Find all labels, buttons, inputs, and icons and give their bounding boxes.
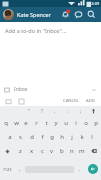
staticText: h (60, 133, 64, 141)
staticText: i (75, 119, 77, 127)
button[interactable]: , (48, 106, 61, 116)
button[interactable]: x (26, 144, 37, 158)
button[interactable]: : (61, 106, 74, 116)
button[interactable]: ? (35, 106, 48, 116)
staticText: n (70, 147, 74, 155)
button[interactable]: l (87, 130, 97, 144)
button[interactable]: Enter (84, 159, 101, 179)
staticText: CANCEL (63, 98, 79, 104)
button[interactable]: t (41, 116, 51, 130)
button[interactable]: b (57, 144, 67, 158)
button[interactable]: z (15, 144, 26, 158)
button[interactable]: Space (25, 159, 74, 179)
button[interactable]: i (71, 116, 81, 130)
staticText: b (60, 147, 64, 155)
button[interactable]: Priority (17, 97, 25, 105)
staticText: t (45, 119, 48, 127)
staticText: . (79, 166, 81, 173)
staticText: x (30, 147, 34, 155)
button[interactable]: Messages (72, 8, 85, 21)
button[interactable]: ; (74, 106, 87, 116)
staticText: Inbox (14, 86, 28, 93)
staticText: k (80, 133, 84, 141)
button[interactable]: n (67, 144, 77, 158)
staticText: , (54, 108, 56, 114)
staticText: ; (80, 108, 82, 114)
staticText: ?123 (3, 167, 12, 172)
staticText: e (24, 119, 28, 127)
button[interactable]: s (15, 130, 26, 144)
button[interactable]: c (37, 144, 47, 158)
button[interactable]: Add a to-do in "Inbox"... (5, 27, 101, 38)
button[interactable]: ADD (84, 96, 97, 106)
staticText: a (8, 133, 12, 141)
button[interactable]: o (81, 116, 91, 130)
button[interactable]: h (57, 130, 67, 144)
staticText: q (4, 119, 8, 127)
button[interactable]: m (77, 144, 87, 158)
staticText: g (50, 133, 54, 141)
button[interactable]: f (37, 130, 47, 144)
staticText: m (79, 147, 85, 155)
staticText: r (35, 119, 38, 127)
staticText: " (28, 108, 30, 114)
staticText: , (19, 166, 21, 173)
button[interactable]: k (77, 130, 87, 144)
staticText: 12:09 (89, 1, 100, 6)
staticText: f (41, 133, 44, 141)
button[interactable]: Search (85, 8, 98, 21)
staticText: p (94, 119, 98, 127)
button[interactable]: r (31, 116, 41, 130)
staticText: l (91, 133, 93, 141)
button[interactable]: ?123 (0, 159, 15, 179)
staticText: y (54, 119, 58, 127)
button[interactable]: g (47, 130, 57, 144)
staticText: w (14, 119, 19, 127)
button[interactable]: Schedule (4, 97, 12, 105)
staticText: v (50, 147, 54, 155)
button[interactable]: j (67, 130, 77, 144)
button[interactable]: p (91, 116, 101, 130)
button[interactable]: , (15, 159, 24, 179)
button[interactable]: v (47, 144, 57, 158)
staticText: ADD (86, 98, 95, 104)
staticText: j (71, 133, 73, 141)
button[interactable]: u (61, 116, 71, 130)
button[interactable]: w (11, 116, 21, 130)
button[interactable]: q (0, 116, 11, 130)
button[interactable]: Backspace (87, 144, 101, 158)
button[interactable]: Notifications (59, 8, 72, 21)
staticText: d (30, 133, 34, 141)
button[interactable]: y (51, 116, 61, 130)
button[interactable]: Shift (0, 144, 15, 158)
staticText: o (84, 119, 88, 127)
button[interactable]: Voice input (87, 106, 100, 116)
button[interactable]: a (4, 130, 15, 144)
staticText: ? (41, 108, 43, 114)
staticText: s (19, 133, 22, 141)
staticText: c (41, 147, 44, 155)
button[interactable]: Kate Spencer (17, 11, 51, 18)
staticText: u (64, 119, 68, 127)
button[interactable]: CANCEL (61, 96, 81, 106)
button[interactable]: e (21, 116, 31, 130)
button[interactable]: " (22, 106, 35, 116)
staticText: z (19, 147, 22, 155)
button[interactable]: d (26, 130, 37, 144)
button[interactable]: Profile (3, 9, 14, 20)
button[interactable]: Inbox (4, 84, 97, 95)
staticText: : (67, 108, 69, 114)
staticText: Add a to-do in "Inbox"... (5, 27, 67, 34)
button[interactable]: . (75, 159, 84, 179)
